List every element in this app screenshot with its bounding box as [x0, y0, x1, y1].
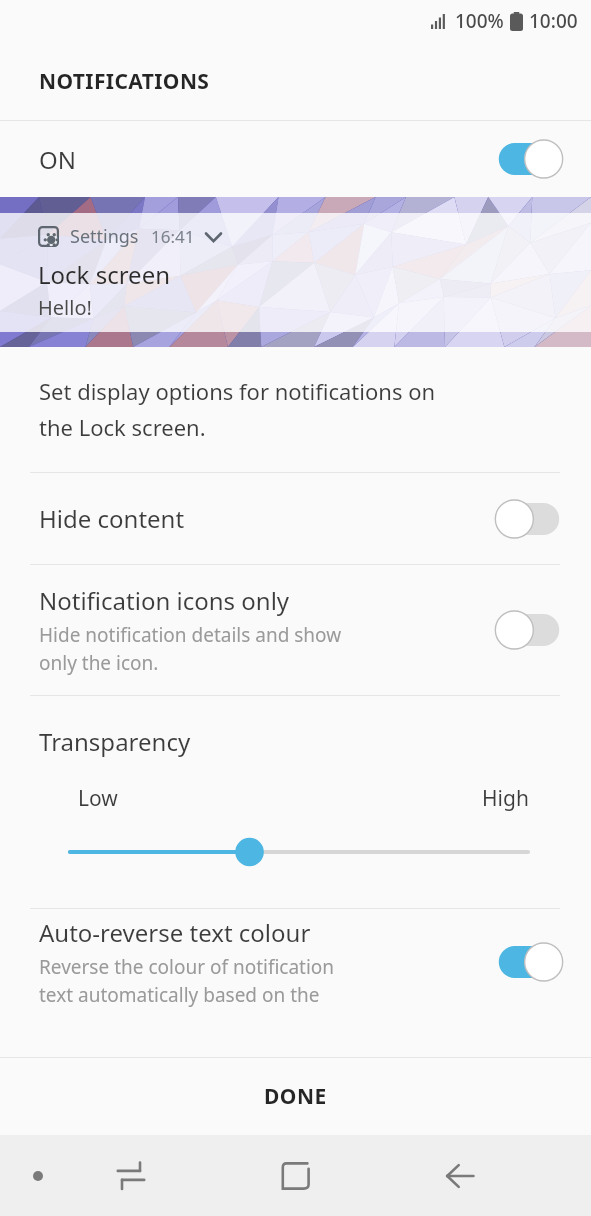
staticText: DONE — [264, 1082, 327, 1111]
staticText: Hide notification details and show — [39, 622, 342, 648]
button[interactable]: DONE — [0, 1057, 591, 1135]
button[interactable]: Home — [266, 1146, 326, 1206]
staticText: NOTIFICATIONS — [39, 67, 210, 96]
button[interactable]: Notification icons only — [0, 565, 591, 695]
staticText: Settings — [70, 224, 139, 249]
staticText: 16:41 — [151, 225, 195, 248]
staticText: Transparency — [39, 725, 191, 758]
staticText: Notification icons only — [39, 584, 290, 617]
staticText: Hello! — [38, 294, 92, 321]
staticText: Set display options for notifications on — [39, 376, 436, 406]
button[interactable]: Switch on — [493, 942, 565, 982]
button[interactable]: Back — [432, 1148, 488, 1204]
button[interactable]: Keyboard indicator — [22, 1160, 54, 1192]
staticText: 100% — [455, 8, 504, 34]
staticText: Reverse the colour of notification — [39, 954, 335, 980]
button[interactable]: Hide content — [0, 473, 591, 564]
button[interactable]: Recent apps — [103, 1148, 159, 1204]
staticText: High — [482, 784, 529, 813]
button[interactable]: Switch off — [493, 499, 565, 539]
staticText: only the icon. — [39, 650, 159, 676]
staticText: ON — [39, 143, 76, 176]
staticText: the Lock screen. — [39, 412, 206, 442]
button[interactable]: Transparency — [0, 696, 591, 908]
button[interactable]: Settings — [0, 213, 591, 332]
button[interactable]: Switch off — [493, 610, 565, 650]
staticText: text automatically based on the — [39, 982, 320, 1008]
staticText: Auto-reverse text colour — [39, 916, 311, 949]
button[interactable]: Auto-reverse text colour — [0, 909, 591, 1014]
button[interactable]: Switch on — [493, 139, 565, 179]
button[interactable]: ON — [0, 121, 591, 197]
staticText: Lock screen — [38, 258, 171, 291]
staticText: Hide content — [39, 502, 185, 535]
staticText: 10:00 — [529, 8, 578, 34]
staticText: Low — [78, 784, 118, 813]
